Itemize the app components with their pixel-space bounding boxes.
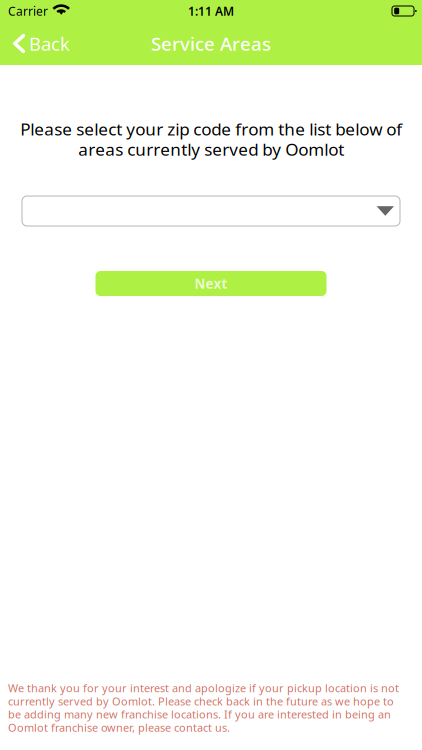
staticText: Service Areas: [151, 32, 271, 55]
staticText: Next: [194, 275, 227, 292]
button[interactable]: Back: [0, 26, 78, 61]
button[interactable]: Next: [95, 271, 326, 296]
staticText: Back: [29, 32, 70, 55]
staticText: 1:11 AM: [188, 4, 234, 18]
staticText: We thank you for your interest and apolo…: [8, 682, 399, 734]
button[interactable]: Select zip code: [22, 196, 400, 226]
staticText: Carrier: [8, 4, 48, 18]
staticText: Please select your zip code from the lis…: [20, 118, 402, 159]
